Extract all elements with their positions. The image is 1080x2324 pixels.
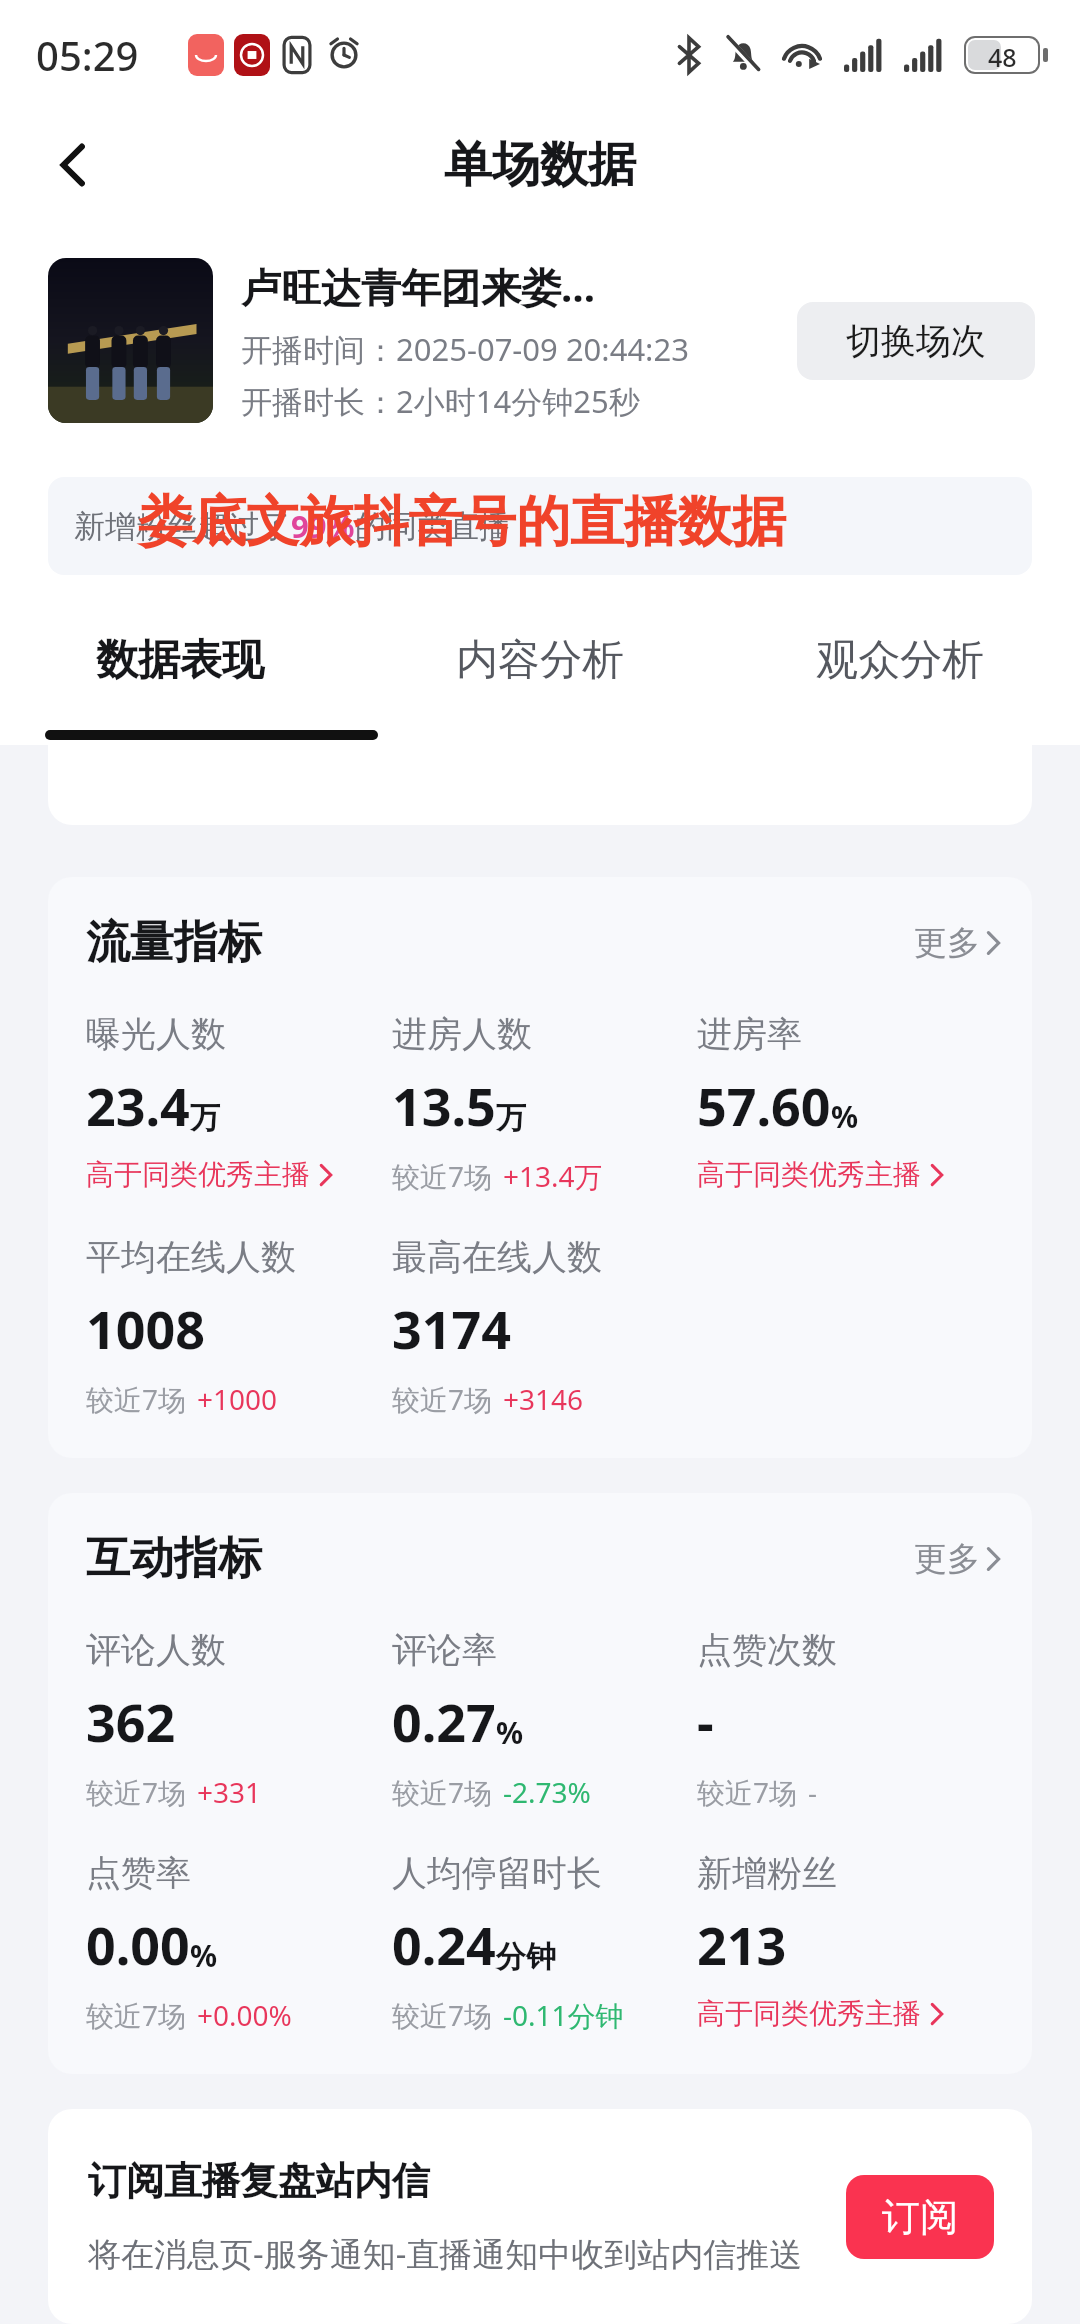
staticText: 高于同类优秀主播 xyxy=(697,1157,921,1192)
button[interactable]: Back xyxy=(28,119,120,211)
staticText: 数据表现 xyxy=(96,634,264,687)
staticText: 的同类直播 xyxy=(355,507,510,546)
staticText: 评论人数 xyxy=(86,1628,226,1672)
staticText: 卢旺达青年团来娄… xyxy=(241,259,596,314)
staticText: 人均停留时长 xyxy=(392,1851,602,1895)
staticText: 05:29 xyxy=(36,28,139,82)
staticText: 更多 xyxy=(914,922,980,964)
staticText: -2.73% xyxy=(503,1773,591,1811)
staticText: 新增粉丝 xyxy=(697,1851,837,1895)
staticText: -0.11分钟 xyxy=(503,1996,624,2034)
staticText: +331 xyxy=(197,1773,262,1811)
staticText: 点赞次数 xyxy=(697,1628,837,1672)
staticText: 0.27 xyxy=(392,1686,496,1757)
staticText: 0.24 xyxy=(392,1909,496,1980)
staticText: 高于同类优秀主播 xyxy=(86,1157,310,1192)
staticText: 订阅直播复盘站内信 xyxy=(88,2157,430,2205)
staticText: 57.60 xyxy=(697,1070,831,1141)
staticText: % xyxy=(831,1096,859,1137)
button[interactable]: 高于同类优秀主播 xyxy=(86,1157,334,1192)
staticText: 曝光人数 xyxy=(86,1012,226,1056)
staticText: 0.00 xyxy=(86,1909,190,1980)
staticText: 流量指标 xyxy=(86,915,262,970)
button[interactable]: 数据表现 xyxy=(0,610,360,745)
staticText: 评论率 xyxy=(392,1628,497,1672)
staticText: 1008 xyxy=(86,1293,205,1364)
staticText: 最高在线人数 xyxy=(392,1235,602,1279)
staticText: - xyxy=(808,1773,818,1811)
staticText: +1000 xyxy=(197,1380,278,1418)
button[interactable]: 高于同类优秀主播 xyxy=(697,1157,945,1192)
button[interactable]: 切换场次 xyxy=(797,302,1035,380)
staticText: 3174 xyxy=(392,1293,511,1364)
staticText: 高于同类优秀主播 xyxy=(697,1996,921,2031)
staticText: 较近7场 xyxy=(86,1773,187,1811)
staticText: +13.4万 xyxy=(503,1157,603,1195)
button[interactable]: 内容分析 xyxy=(360,610,720,745)
staticText: 万 xyxy=(496,1099,526,1137)
staticText: 点赞率 xyxy=(86,1851,191,1895)
button[interactable]: 更多 xyxy=(914,1538,1002,1580)
staticText: 13.5 xyxy=(392,1070,496,1141)
staticText: 娄底文旅抖音号的直播数据 xyxy=(138,488,786,556)
staticText: 99% xyxy=(291,505,355,547)
staticText: 较近7场 xyxy=(697,1773,798,1811)
staticText: +3146 xyxy=(503,1380,584,1418)
staticText: % xyxy=(190,1935,218,1976)
staticText: 213 xyxy=(697,1909,787,1980)
staticText: - xyxy=(697,1686,714,1757)
staticText: 开播时长：2小时14分钟25秒 xyxy=(241,380,640,422)
staticText: 订阅 xyxy=(882,2193,958,2241)
staticText: 切换场次 xyxy=(846,319,986,363)
button[interactable]: 新增粉丝超过了 xyxy=(48,477,1032,575)
staticText: 进房率 xyxy=(697,1012,802,1056)
staticText: 48 xyxy=(988,40,1017,70)
staticText: +0.00% xyxy=(197,1996,292,2034)
staticText: 将在消息页-服务通知-直播通知中收到站内信推送 xyxy=(88,2231,803,2276)
staticText: 进房人数 xyxy=(392,1012,532,1056)
staticText: 平均在线人数 xyxy=(86,1235,296,1279)
staticText: 互动指标 xyxy=(86,1531,262,1586)
staticText: 较近7场 xyxy=(392,1157,493,1195)
staticText: 开播时间：2025-07-09 20:44:23 xyxy=(241,328,689,370)
staticText: 较近7场 xyxy=(86,1380,187,1418)
staticText: 单场数据 xyxy=(444,135,636,195)
staticText: 内容分析 xyxy=(456,634,624,687)
staticText: 较近7场 xyxy=(86,1996,187,2034)
staticText: 较近7场 xyxy=(392,1996,493,2034)
staticText: 观众分析 xyxy=(816,634,984,687)
staticText: 万 xyxy=(190,1099,220,1137)
staticText: 新增粉丝超过了 xyxy=(74,507,291,546)
button[interactable]: 观众分析 xyxy=(720,610,1080,745)
staticText: 更多 xyxy=(914,1538,980,1580)
staticText: 较近7场 xyxy=(392,1380,493,1418)
staticText: % xyxy=(496,1712,524,1753)
staticText: 较近7场 xyxy=(392,1773,493,1811)
staticText: 362 xyxy=(86,1686,176,1757)
button[interactable]: 高于同类优秀主播 xyxy=(697,1996,945,2031)
staticText: 分钟 xyxy=(496,1938,556,1976)
button[interactable]: 更多 xyxy=(914,922,1002,964)
button[interactable]: 订阅 xyxy=(846,2175,994,2259)
staticText: 23.4 xyxy=(86,1070,190,1141)
